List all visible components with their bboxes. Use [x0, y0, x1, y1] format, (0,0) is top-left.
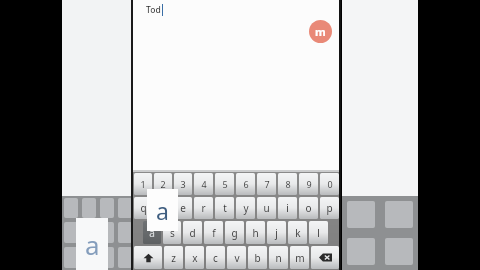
button[interactable]	[134, 246, 162, 269]
button[interactable]: i	[278, 197, 297, 219]
button[interactable]: j	[267, 221, 286, 244]
button[interactable]: y	[236, 197, 255, 219]
staticText: l	[317, 226, 320, 240]
staticText: 1	[140, 178, 146, 190]
staticText: 8	[285, 178, 291, 190]
button[interactable]: r	[194, 197, 213, 219]
staticText: s	[170, 226, 175, 240]
button[interactable]: h	[246, 221, 265, 244]
button[interactable]: p	[320, 197, 339, 219]
button[interactable]: z	[164, 246, 183, 269]
button[interactable]: 8	[278, 173, 297, 195]
button[interactable]: App badge	[309, 20, 332, 43]
staticText: a	[156, 195, 169, 226]
button[interactable]: 3	[174, 173, 192, 195]
button[interactable]: 6	[236, 173, 255, 195]
staticText: f	[212, 226, 216, 240]
button[interactable]: q	[134, 197, 152, 219]
staticText: 4	[201, 178, 207, 190]
button[interactable]: a	[147, 189, 178, 231]
staticText: 3	[180, 178, 186, 190]
staticText: o	[305, 201, 312, 215]
button[interactable]: 7	[257, 173, 276, 195]
button[interactable]: v	[227, 246, 246, 269]
staticText: d	[189, 226, 196, 240]
staticText: k	[295, 226, 301, 240]
button[interactable]: t	[215, 197, 234, 219]
staticText: z	[171, 251, 176, 265]
staticText: 2	[160, 178, 166, 190]
staticText: h	[252, 226, 259, 240]
button[interactable]	[311, 246, 339, 269]
staticText: 6	[243, 178, 249, 190]
staticText: 9	[306, 178, 312, 190]
button[interactable]: g	[225, 221, 244, 244]
staticText: a	[149, 226, 155, 240]
staticText: 7	[264, 178, 270, 190]
button[interactable]: n	[269, 246, 288, 269]
staticText: a	[85, 227, 100, 262]
staticText: j	[275, 226, 278, 240]
staticText: r	[201, 201, 206, 215]
staticText: Tod	[146, 4, 161, 16]
button[interactable]: c	[206, 246, 225, 269]
button[interactable]: s	[163, 221, 181, 244]
staticText: g	[231, 226, 238, 240]
staticText: 0	[327, 178, 333, 190]
button[interactable]: f	[204, 221, 223, 244]
button[interactable]: 0	[320, 173, 339, 195]
staticText: m	[315, 24, 326, 39]
staticText: x	[192, 251, 198, 265]
staticText: e	[180, 201, 186, 215]
button[interactable]: 4	[194, 173, 213, 195]
staticText: c	[213, 251, 218, 265]
button[interactable]: d	[183, 221, 202, 244]
staticText: p	[326, 201, 333, 215]
button[interactable]: u	[257, 197, 276, 219]
staticText: w	[159, 201, 167, 215]
staticText: q	[140, 201, 147, 215]
button[interactable]: k	[288, 221, 307, 244]
staticText: u	[263, 201, 270, 215]
button[interactable]: 9	[299, 173, 318, 195]
button[interactable]: 5	[215, 173, 234, 195]
staticText: i	[286, 201, 289, 215]
staticText: b	[254, 251, 261, 265]
staticText: t	[223, 201, 227, 215]
button[interactable]: a	[143, 221, 161, 244]
button[interactable]: w	[154, 197, 172, 219]
button[interactable]: m	[290, 246, 309, 269]
staticText: y	[243, 201, 249, 215]
button[interactable]: x	[185, 246, 204, 269]
button[interactable]: e	[174, 197, 192, 219]
button[interactable]: l	[309, 221, 328, 244]
staticText: m	[295, 251, 305, 265]
button[interactable]: Tod	[146, 4, 163, 16]
button[interactable]: b	[248, 246, 267, 269]
button[interactable]: 2	[154, 173, 172, 195]
staticText: v	[234, 251, 240, 265]
staticText: 5	[222, 178, 228, 190]
button[interactable]: o	[299, 197, 318, 219]
staticText: n	[275, 251, 282, 265]
button[interactable]: 1	[134, 173, 152, 195]
